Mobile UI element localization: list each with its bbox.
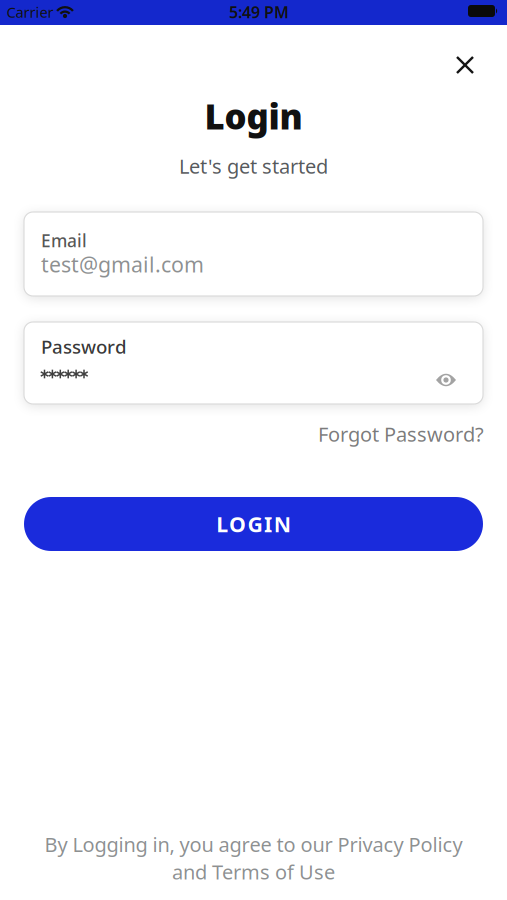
staticText: 5:49 PM — [229, 1, 289, 23]
button[interactable] — [434, 370, 458, 390]
staticText: Carrier — [6, 2, 53, 22]
button[interactable] — [451, 51, 479, 79]
button[interactable]: LOGIN — [24, 497, 483, 551]
staticText: and Terms of Use — [172, 858, 335, 885]
staticText: Login — [204, 93, 302, 139]
button[interactable]: Email — [24, 212, 483, 296]
button[interactable]: Password — [24, 322, 483, 404]
staticText: Email — [41, 229, 87, 252]
staticText: LOGIN — [216, 510, 291, 538]
staticText: Forgot Password? — [318, 421, 484, 447]
staticText: By Logging in, you agree to our Privacy … — [44, 831, 462, 857]
staticText: test@gmail.com — [41, 250, 204, 278]
button[interactable]: Forgot Password? — [318, 421, 484, 447]
staticText: Password — [41, 334, 127, 359]
staticText: Let's get started — [179, 153, 328, 179]
button[interactable]: By Logging in, you agree to our Privacy … — [44, 831, 462, 885]
